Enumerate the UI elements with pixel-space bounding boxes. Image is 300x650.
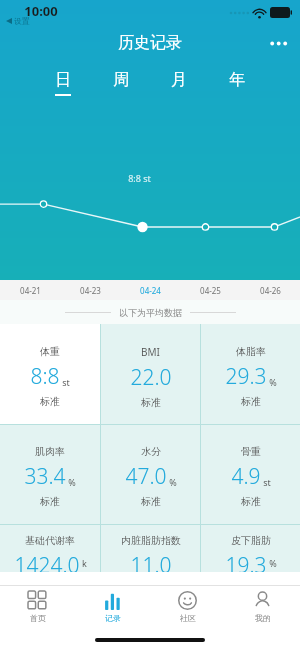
- staticText: st: [263, 476, 271, 488]
- staticText: %: [269, 557, 277, 569]
- staticText: 11.0: [130, 551, 172, 572]
- button[interactable]: 肌肉率: [0, 424, 100, 524]
- staticText: 骨重: [241, 445, 261, 458]
- button[interactable]: BMI: [101, 324, 200, 424]
- staticText: 04-23: [80, 285, 101, 296]
- button[interactable]: 记录: [75, 586, 150, 630]
- staticText: 设置: [14, 16, 30, 26]
- staticText: 22.0: [130, 363, 172, 392]
- staticText: 19.3: [225, 551, 267, 572]
- staticText: 内脏脂肪指数: [121, 534, 181, 547]
- staticText: 水分: [141, 445, 161, 458]
- staticText: 47.0: [125, 462, 167, 491]
- staticText: 04-21: [20, 285, 41, 296]
- staticText: 首页: [30, 613, 46, 623]
- staticText: 肌肉率: [35, 445, 65, 458]
- staticText: st: [62, 376, 70, 388]
- staticText: 皮下脂肪: [231, 534, 271, 547]
- staticText: 社区: [180, 613, 196, 623]
- staticText: 标准: [40, 495, 60, 508]
- button[interactable]: 皮下脂肪: [201, 524, 300, 572]
- staticText: 8:8 st: [128, 172, 151, 184]
- staticText: 8:8: [30, 362, 60, 391]
- staticText: 4.9: [231, 462, 261, 491]
- staticText: 04-24: [140, 285, 161, 296]
- button[interactable]: 体重: [0, 324, 100, 424]
- staticText: 体重: [40, 345, 60, 358]
- button[interactable]: 周: [92, 64, 150, 102]
- staticText: 33.4: [24, 462, 66, 491]
- staticText: 04-26: [260, 285, 281, 296]
- button[interactable]: More options: [258, 35, 300, 52]
- staticText: 以下为平均数据: [119, 307, 182, 318]
- button[interactable]: 水分: [101, 424, 200, 524]
- staticText: 周: [113, 70, 129, 90]
- staticText: 我的: [255, 613, 271, 623]
- staticText: BMI: [141, 345, 160, 359]
- staticText: 标准: [141, 396, 161, 409]
- button[interactable]: 月: [150, 64, 208, 102]
- staticText: k: [82, 557, 87, 569]
- staticText: 基础代谢率: [25, 534, 75, 547]
- staticText: 记录: [105, 613, 121, 623]
- staticText: 10:00: [24, 2, 58, 20]
- staticText: 体脂率: [236, 345, 266, 358]
- staticText: 04-25: [200, 285, 221, 296]
- button[interactable]: 基础代谢率: [0, 524, 100, 572]
- button[interactable]: 社区: [150, 586, 225, 630]
- staticText: 标准: [40, 395, 60, 408]
- button[interactable]: 体脂率: [201, 324, 300, 424]
- staticText: 年: [229, 70, 245, 90]
- button[interactable]: 年: [208, 64, 266, 102]
- button[interactable]: 首页: [0, 586, 75, 630]
- staticText: 日: [55, 70, 71, 90]
- staticText: %: [169, 476, 177, 488]
- staticText: %: [269, 376, 277, 388]
- button[interactable]: 内脏脂肪指数: [101, 524, 200, 572]
- button[interactable]: 骨重: [201, 424, 300, 524]
- staticText: 标准: [141, 495, 161, 508]
- staticText: 29.3: [225, 362, 267, 391]
- staticText: %: [68, 476, 76, 488]
- staticText: 月: [171, 70, 187, 90]
- button[interactable]: 日: [34, 64, 92, 102]
- button[interactable]: 我的: [225, 586, 300, 630]
- staticText: 标准: [241, 395, 261, 408]
- staticText: 标准: [241, 495, 261, 508]
- staticText: 历史记录: [118, 33, 182, 53]
- staticText: 1424.0: [14, 551, 80, 572]
